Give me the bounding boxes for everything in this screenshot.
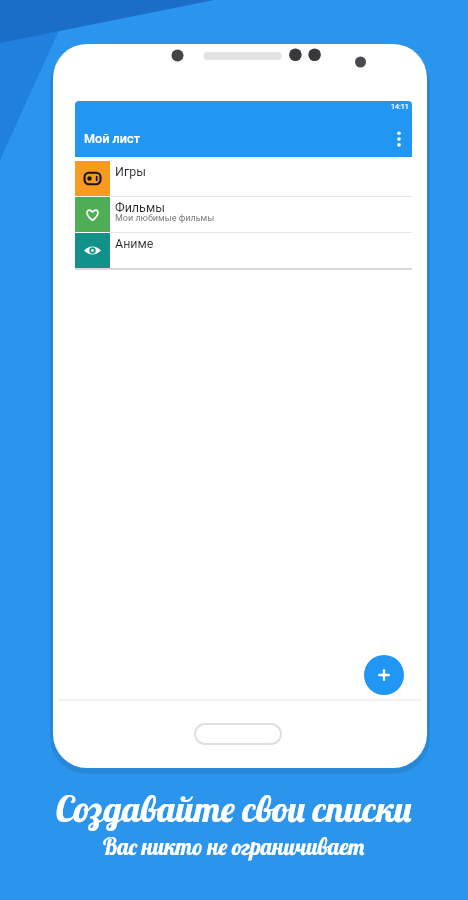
button[interactable]: Аниме bbox=[75, 233, 412, 268]
staticText: Мои любимые фильмы bbox=[115, 213, 215, 224]
staticText: Вас никто не ограничивает bbox=[103, 832, 365, 860]
staticText: Фильмы bbox=[115, 200, 165, 215]
staticText: 14:11 bbox=[391, 102, 409, 110]
button[interactable] bbox=[390, 127, 408, 151]
staticText: Мой лист bbox=[84, 131, 140, 146]
button[interactable] bbox=[364, 655, 404, 695]
staticText: Игры bbox=[115, 164, 146, 179]
staticText: Аниме bbox=[115, 236, 154, 251]
button[interactable]: Игры bbox=[75, 161, 412, 196]
staticText: Создавайте свои списки bbox=[56, 786, 412, 831]
button[interactable]: Фильмы bbox=[75, 197, 412, 232]
button[interactable] bbox=[194, 723, 282, 745]
